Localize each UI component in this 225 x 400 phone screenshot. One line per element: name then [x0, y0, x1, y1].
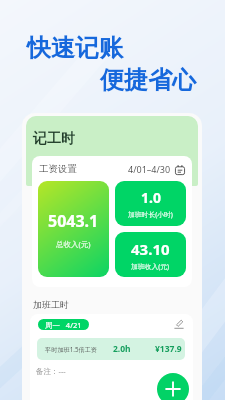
button[interactable]: 平时加班1.5倍工资: [37, 338, 185, 360]
button[interactable]: Add record: [157, 373, 189, 400]
staticText: 记工时: [33, 130, 75, 148]
staticText: ¥137.9: [155, 343, 182, 355]
staticText: 工资设置: [39, 163, 77, 175]
staticText: 总收入(元): [56, 239, 91, 249]
staticText: 备注：---: [36, 366, 66, 376]
button[interactable]: 43.10: [115, 232, 186, 277]
staticText: 43.10: [131, 239, 170, 259]
staticText: 加班收入(元): [131, 262, 170, 271]
staticText: 便捷省心: [100, 65, 196, 95]
button[interactable]: 5043.1: [38, 181, 109, 277]
staticText: 周一 4/21: [45, 320, 82, 330]
staticText: 2.0h: [113, 343, 131, 355]
button[interactable]: Pick date range: [174, 164, 185, 175]
staticText: 加班时长(小时): [128, 210, 173, 219]
staticText: 加班工时: [33, 299, 69, 310]
staticText: 4/01–4/30: [128, 163, 171, 175]
staticText: 5043.1: [48, 210, 99, 232]
staticText: 平时加班1.5倍工资: [45, 345, 98, 353]
button[interactable]: 周一 4/21: [38, 319, 89, 330]
staticText: 快速记账: [27, 33, 123, 63]
button[interactable]: 1.0: [115, 181, 186, 226]
staticText: 1.0: [141, 188, 161, 207]
button[interactable]: Edit entry: [173, 318, 185, 330]
